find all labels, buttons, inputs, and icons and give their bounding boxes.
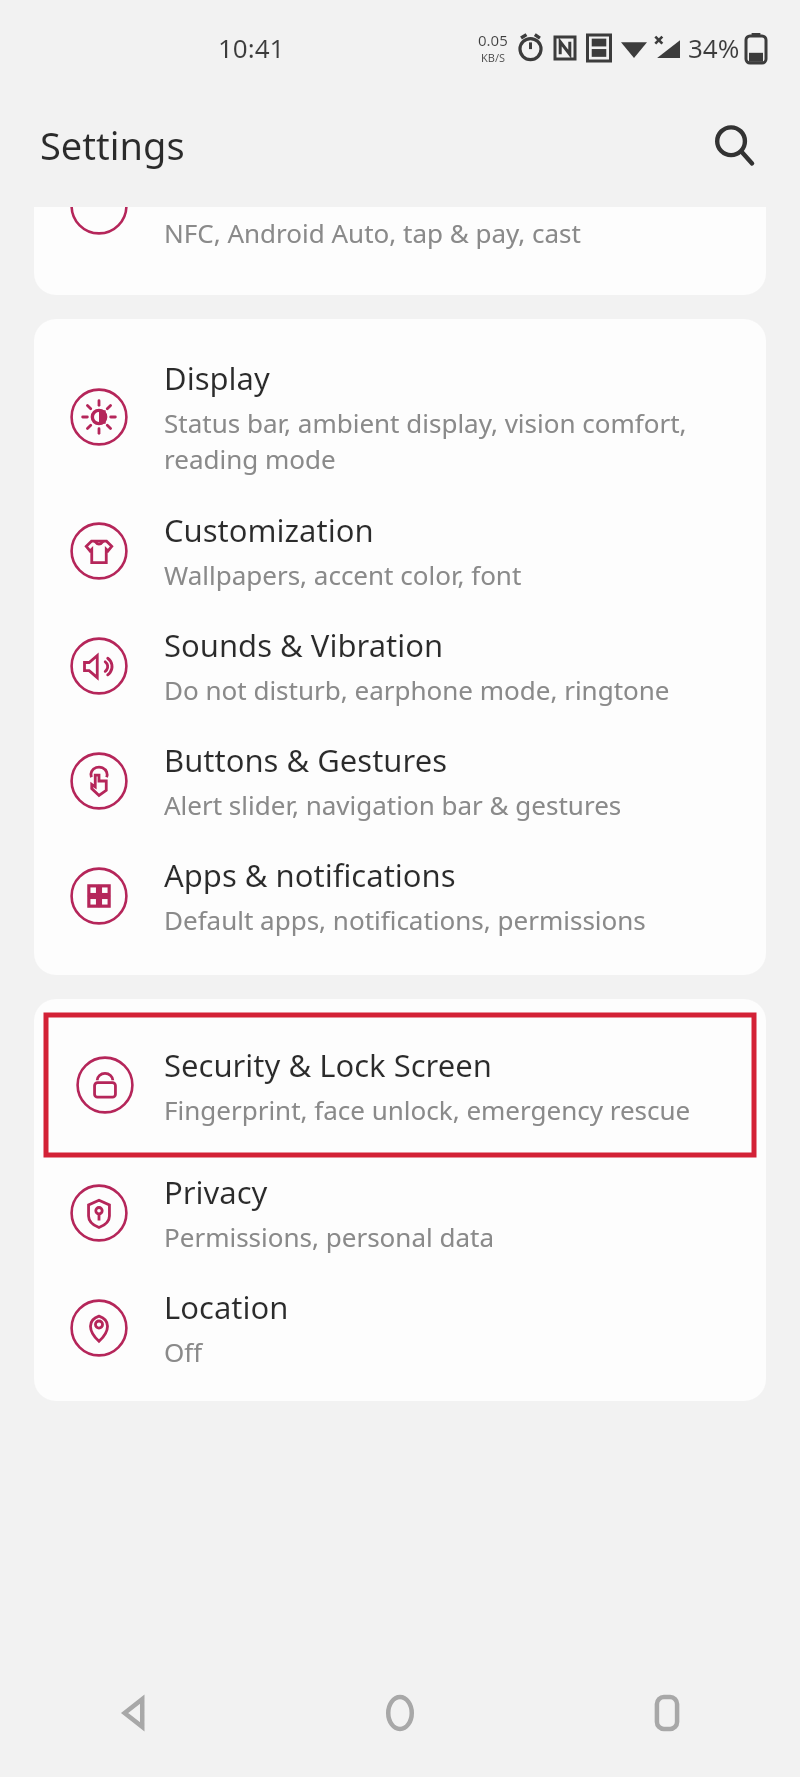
button[interactable]: Home (266, 1649, 533, 1777)
staticText: Do not disturb, earphone mode, ringtone (164, 672, 670, 707)
staticText: NFC, Android Auto, tap & pay, cast (164, 215, 581, 250)
staticText: Security & Lock Screen (164, 1044, 492, 1086)
staticText: Location (164, 1286, 289, 1328)
button[interactable]: Customization (34, 493, 766, 608)
button[interactable]: NFC, Android Auto, tap & pay, cast (34, 207, 766, 295)
staticText: Privacy (164, 1171, 268, 1213)
button[interactable]: Display (34, 341, 766, 493)
staticText: Status bar, ambient display, vision comf… (164, 405, 687, 477)
button[interactable]: Security & Lock Screen (46, 1015, 754, 1155)
staticText: Default apps, notifications, permissions (164, 902, 646, 937)
button[interactable]: Privacy (34, 1155, 766, 1270)
button[interactable]: Recent apps (533, 1649, 800, 1777)
staticText: 10:41 (218, 30, 285, 65)
staticText: Customization (164, 509, 374, 551)
staticText: 34% (688, 30, 740, 65)
staticText: Sounds & Vibration (164, 624, 444, 666)
staticText: KB/S (481, 50, 506, 65)
staticText: Display (164, 357, 270, 399)
staticText: Off (164, 1334, 203, 1369)
staticText: Fingerprint, face unlock, emergency resc… (164, 1092, 691, 1127)
button[interactable]: Apps & notifications (34, 838, 766, 953)
staticText: Alert slider, navigation bar & gestures (164, 787, 622, 822)
staticText: Permissions, personal data (164, 1219, 494, 1254)
button[interactable]: Location (34, 1270, 766, 1385)
button[interactable]: Buttons & Gestures (34, 723, 766, 838)
button[interactable]: Back (0, 1649, 266, 1777)
staticText: Wallpapers, accent color, font (164, 557, 522, 592)
button[interactable]: Search (704, 115, 764, 175)
staticText: Buttons & Gestures (164, 739, 448, 781)
staticText: Apps & notifications (164, 854, 456, 896)
staticText: 0.05 (478, 30, 508, 50)
staticText: Settings (40, 119, 185, 171)
button[interactable]: Sounds & Vibration (34, 608, 766, 723)
